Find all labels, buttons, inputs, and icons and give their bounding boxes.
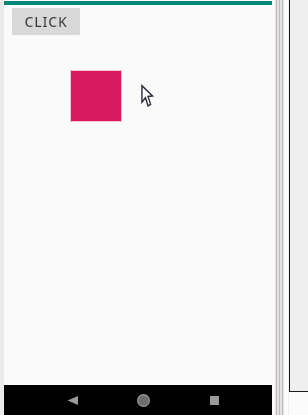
button[interactable]: Back [58,385,86,415]
staticText: CLICK [24,12,68,31]
button[interactable]: Home [129,385,157,415]
button[interactable]: Recent apps [200,385,228,415]
button[interactable]: CLICK [12,8,80,35]
